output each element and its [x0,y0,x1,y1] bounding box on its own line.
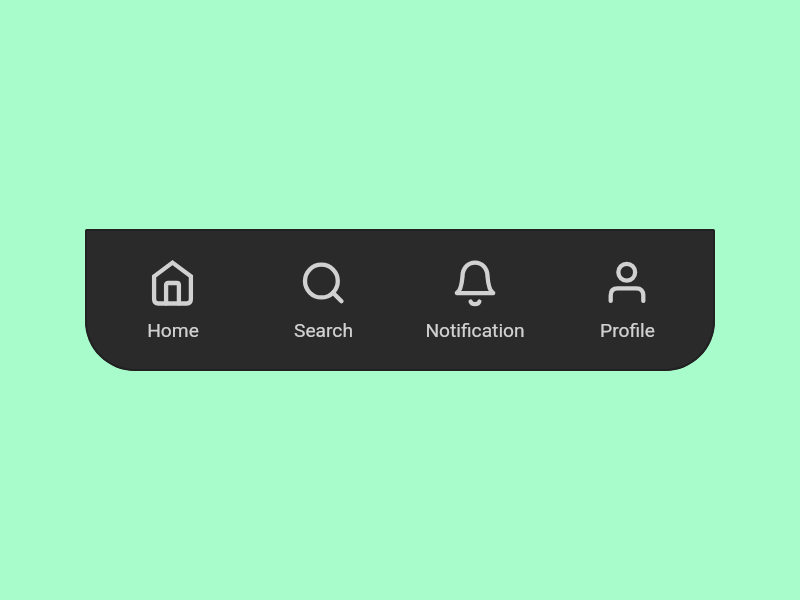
button[interactable]: Profile [551,229,703,371]
button[interactable]: Search [248,229,399,371]
other: Profile [551,229,703,371]
staticText: Search [294,319,353,342]
other: Home [97,229,248,371]
staticText: Notification [425,319,525,342]
other: Notification [399,229,551,371]
other: Search [248,229,399,371]
staticText: Home [147,319,199,342]
staticText: Profile [600,319,655,342]
button[interactable]: Notification [399,229,551,371]
button[interactable]: Home [97,229,248,371]
